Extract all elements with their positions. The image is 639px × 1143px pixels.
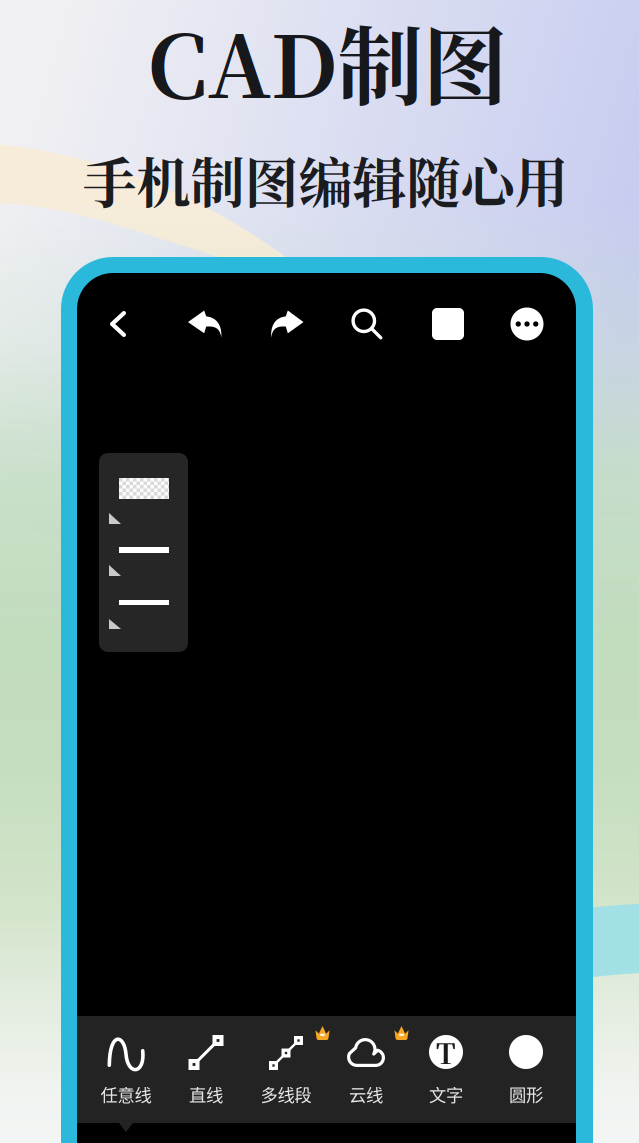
- button[interactable]: T: [406, 1016, 486, 1108]
- staticText: 云线: [349, 1081, 383, 1107]
- staticText: 文字: [429, 1081, 463, 1107]
- staticText: 直线: [189, 1081, 223, 1107]
- button[interactable]: Search: [339, 298, 395, 350]
- button[interactable]: Shape: [420, 298, 476, 350]
- staticText: T: [436, 1032, 456, 1072]
- staticText: 多线段: [260, 1081, 311, 1107]
- staticText: 任意线: [100, 1081, 151, 1107]
- button[interactable]: 多线段: [246, 1016, 326, 1108]
- button[interactable]: Undo: [177, 298, 233, 350]
- staticText: CAD制图: [147, 0, 507, 122]
- button[interactable]: 云线: [326, 1016, 406, 1108]
- button[interactable]: 圆形: [486, 1016, 566, 1108]
- staticText: 圆形: [509, 1081, 543, 1107]
- button[interactable]: Back: [93, 298, 143, 350]
- staticText: 手机制图编辑随心用: [82, 141, 568, 219]
- button[interactable]: 任意线: [86, 1016, 166, 1108]
- button[interactable]: More: [499, 298, 555, 350]
- button[interactable]: Redo: [259, 298, 315, 350]
- button[interactable]: 直线: [166, 1016, 246, 1108]
